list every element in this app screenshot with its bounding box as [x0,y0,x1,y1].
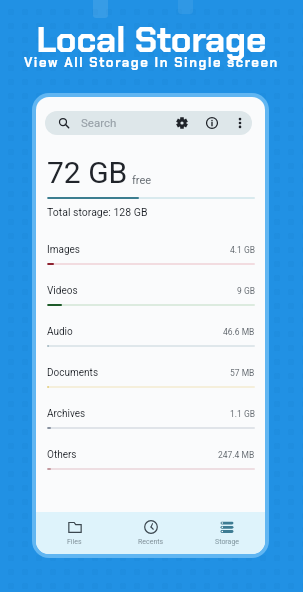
staticText: View All Storage In Single screen [24,54,279,71]
staticText: 57 MB [230,368,255,378]
staticText: Videos [47,285,78,297]
button[interactable]: Videos [36,285,265,326]
staticText: 247.4 MB [218,450,255,460]
staticText: free [132,174,152,187]
button[interactable]: Search [45,111,252,135]
button[interactable]: Images [36,244,265,285]
staticText: Archives [47,408,86,420]
staticText: Audio [47,326,73,338]
staticText: Recents [138,538,164,546]
staticText: Storage [215,538,240,546]
button[interactable]: Others [36,449,265,490]
staticText: 1.1 GB [230,409,255,419]
button[interactable]: Info [206,117,218,129]
staticText: 46.6 MB [223,327,255,337]
button[interactable]: Files [36,512,113,554]
staticText: Files [67,538,82,546]
button[interactable]: More options [234,117,246,129]
button[interactable]: Recents [113,512,189,554]
button[interactable]: Documents [36,367,265,408]
button[interactable]: Audio [36,326,265,367]
button[interactable]: Archives [36,408,265,449]
staticText: 9 GB [237,286,255,296]
button[interactable]: Storage [189,512,265,554]
button[interactable]: Settings [176,117,188,129]
staticText: Search [81,116,117,129]
staticText: 4.1 GB [230,245,255,255]
staticText: Others [47,449,77,461]
staticText: Images [47,244,81,256]
staticText: Local Storage [36,17,267,63]
staticText: Total storage: 128 GB [47,206,148,218]
staticText: 72 GB [47,155,128,190]
staticText: Documents [47,367,99,379]
